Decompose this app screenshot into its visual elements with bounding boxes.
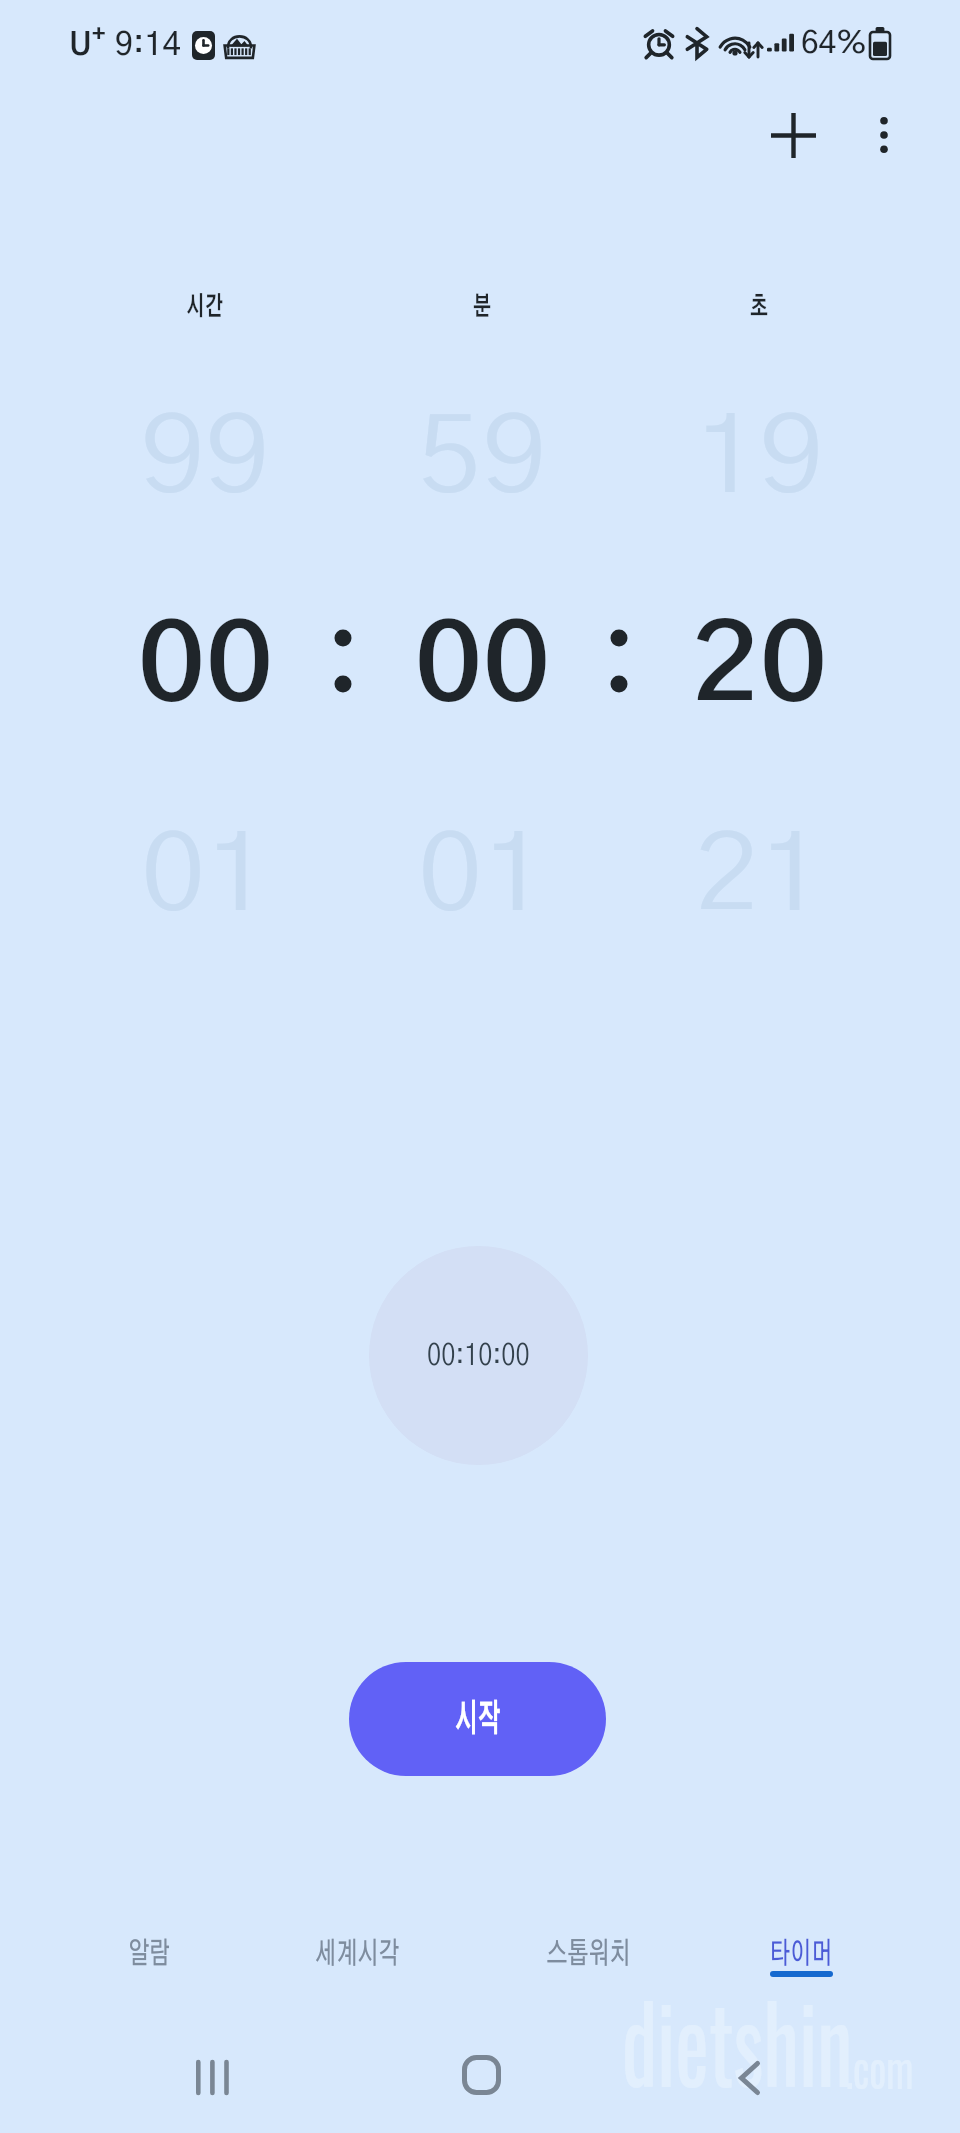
staticText: 00:10:00 [427,1341,530,1371]
staticText: 21 [695,825,824,930]
button[interactable]: Recents [132,2021,292,2133]
staticText: dietshin [621,1962,852,2118]
button[interactable]: 스톱워치 [476,1898,701,1998]
button[interactable]: 분 [352,370,612,930]
staticText: .com [845,2029,913,2103]
staticText: 64% [801,28,867,59]
button[interactable]: 타이머 [701,1898,901,1998]
staticText: 59 [418,407,547,512]
staticText: 20 [691,616,827,721]
button[interactable]: 시작 [349,1662,606,1776]
staticText: 스톱워치 [546,1939,631,1969]
staticText: 01 [141,825,270,930]
button[interactable]: 00:10:00 [369,1246,588,1465]
button[interactable]: 알람 [45,1898,253,1998]
button[interactable]: More options [836,87,932,183]
button[interactable]: Back [669,2021,829,2133]
staticText: 01 [418,825,547,930]
staticText: 타이머 [769,1939,833,1969]
button[interactable]: Add timer [745,87,841,183]
staticText: 00 [137,616,273,721]
button[interactable]: Home [401,2018,561,2131]
button[interactable]: 시간 [75,370,335,930]
staticText: U [69,30,92,61]
staticText: 시간 [187,294,223,320]
staticText: 세계시각 [315,1939,400,1969]
staticText: 초 [750,294,768,320]
staticText: 9:14 [115,29,181,61]
staticText: 시작 [455,1701,501,1738]
staticText: 분 [473,294,491,320]
staticText: 알람 [128,1939,171,1969]
staticText: 99 [141,407,270,512]
staticText: + [92,24,106,47]
button[interactable]: 초 [629,370,889,930]
staticText: 00 [414,616,550,721]
button[interactable]: 세계시각 [242,1898,473,1998]
staticText: 19 [695,407,824,512]
